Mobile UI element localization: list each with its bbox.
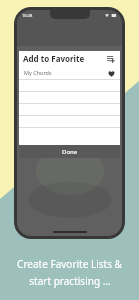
button[interactable]: [19, 79, 120, 91]
staticText: 10:28: [22, 13, 33, 18]
button[interactable]: Done: [19, 145, 120, 158]
button[interactable]: Add new list: [105, 53, 116, 64]
button[interactable]: [19, 115, 120, 127]
staticText: Add to Favorite: [23, 53, 85, 64]
button[interactable]: [19, 91, 120, 103]
button[interactable]: [19, 103, 120, 115]
button[interactable]: Favorite: [106, 68, 116, 78]
button[interactable]: My Chords: [19, 66, 120, 79]
staticText: Create Favorite Lists &: [17, 257, 122, 271]
staticText: start practising ...: [29, 274, 111, 288]
button[interactable]: [19, 127, 120, 139]
staticText: My Chords: [24, 69, 52, 76]
staticText: Done: [62, 148, 78, 156]
